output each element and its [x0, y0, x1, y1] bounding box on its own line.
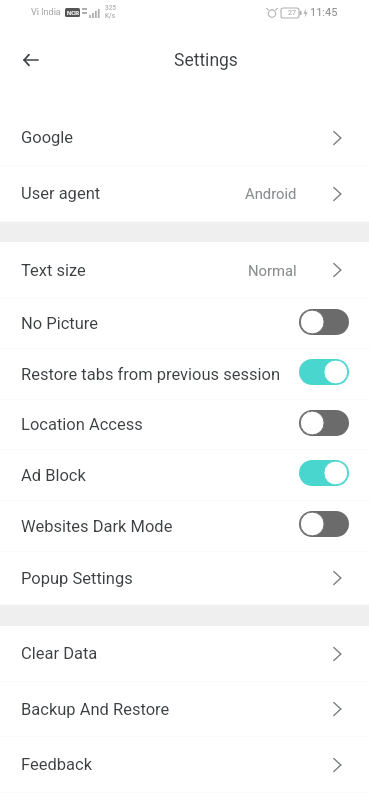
staticText: Restore tabs from previous session	[21, 365, 281, 384]
button[interactable]: Back	[14, 44, 46, 76]
button[interactable]: Restore tabs from previous session	[0, 349, 369, 399]
staticText: NCR	[67, 9, 79, 16]
staticText: Ad Block	[21, 466, 86, 485]
staticText: Backup And Restore	[21, 700, 170, 719]
staticText: 325	[105, 4, 116, 12]
button[interactable]: Popup Settings	[0, 552, 369, 604]
staticText: Vi India	[31, 7, 61, 18]
staticText: Normal	[248, 262, 297, 279]
button[interactable]: Google	[0, 110, 369, 165]
staticText: Websites Dark Mode	[21, 517, 173, 536]
button[interactable]: Feedback	[0, 737, 369, 792]
staticText: User agent	[21, 184, 101, 203]
staticText: K/s	[105, 12, 116, 20]
staticText: 27	[288, 9, 296, 17]
button[interactable]: Ad Block	[0, 450, 369, 500]
button[interactable]: User agent	[0, 166, 369, 221]
staticText: Text size	[21, 261, 86, 280]
staticText: Clear Data	[21, 644, 98, 663]
button[interactable]: No Picture	[0, 299, 369, 348]
staticText: 11:45	[310, 6, 338, 19]
button[interactable]: Clear Data	[0, 626, 369, 681]
button[interactable]: Text size	[0, 242, 369, 298]
staticText: Popup Settings	[21, 569, 133, 588]
button[interactable]: Backup And Restore	[0, 682, 369, 736]
staticText: Location Access	[21, 415, 143, 434]
staticText: Android	[245, 185, 297, 202]
staticText: No Picture	[21, 314, 99, 333]
staticText: Google	[21, 128, 74, 147]
button[interactable]: Websites Dark Mode	[0, 501, 369, 551]
staticText: Settings	[174, 50, 238, 71]
button[interactable]: Location Access	[0, 400, 369, 449]
staticText: Feedback	[21, 755, 92, 774]
